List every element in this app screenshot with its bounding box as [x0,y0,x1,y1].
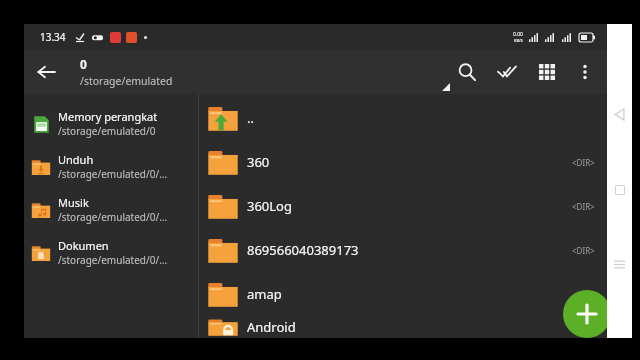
button[interactable]: 360 [199,140,607,184]
button[interactable]: Add [563,290,611,338]
button[interactable]: Android [199,316,607,338]
button[interactable]: Back [24,50,68,94]
button[interactable]: Recent apps [607,252,632,277]
staticText: /storage/emulated/0 [58,124,156,138]
staticText: /storage/emulated [80,74,173,88]
staticText: 0.00 [513,31,523,38]
staticText: <DIR> [572,201,595,212]
staticText: 360 [247,153,572,171]
staticText: Unduh [58,152,94,167]
button[interactable]: Grid view [527,52,567,92]
button[interactable]: Memory perangkat [24,102,198,145]
button[interactable]: 869566040389173 [199,228,607,272]
staticText: 360Log [247,197,572,215]
staticText: /storage/emulated/0/… [58,253,168,267]
button[interactable]: .. [199,96,607,140]
button[interactable]: Select all [487,52,527,92]
staticText: /storage/emulated/0/… [58,210,168,224]
staticText: Dokumen [58,238,109,253]
button[interactable]: 360Log [199,184,607,228]
staticText: Musik [58,195,89,210]
staticText: Android [247,318,595,336]
staticText: Memory perangkat [58,109,158,124]
staticText: KB/S [514,38,523,43]
button[interactable]: Back [607,102,632,127]
button[interactable]: Search [447,52,487,92]
button[interactable]: Unduh [24,145,198,188]
button[interactable]: Musik [24,188,198,231]
button[interactable]: Home [607,177,632,202]
staticText: /storage/emulated/0/… [58,167,168,181]
staticText: <DIR> [572,157,595,168]
button[interactable]: amap [199,272,607,316]
staticText: 0 [80,56,87,72]
staticText: 13.34 [40,30,66,44]
staticText: <DIR> [572,245,595,256]
staticText: .. [247,109,595,127]
button[interactable]: More options [567,54,603,90]
staticText: 869566040389173 [247,241,572,259]
staticText: amap [247,285,595,303]
button[interactable]: Dokumen [24,231,198,274]
